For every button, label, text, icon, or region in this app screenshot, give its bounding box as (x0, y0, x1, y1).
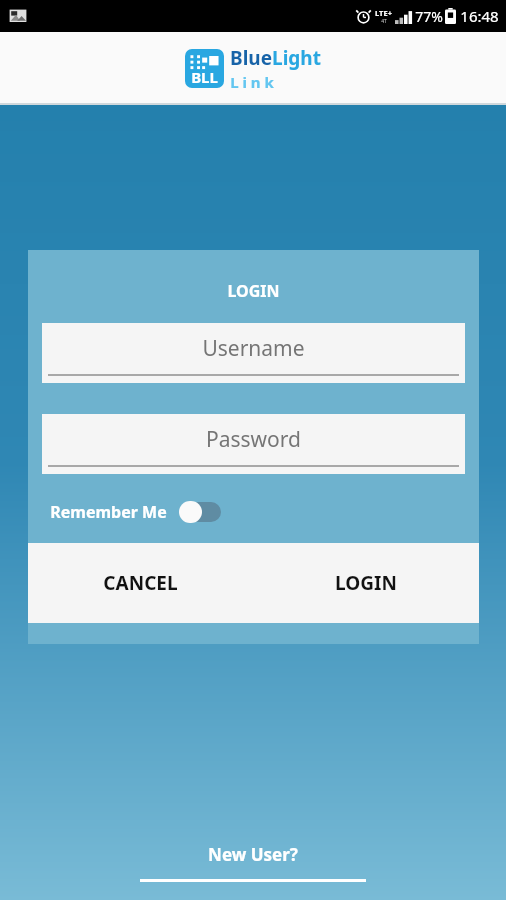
staticText: Light (272, 45, 321, 71)
staticText: 4T (381, 18, 387, 25)
button[interactable]: Username (42, 323, 465, 383)
staticText: LOGIN (335, 570, 397, 596)
staticText: New User? (208, 843, 298, 866)
staticText: BLL (191, 67, 218, 87)
button[interactable]: CANCEL (28, 543, 253, 623)
button[interactable]: New User? (0, 843, 506, 882)
staticText: 16:48 (460, 6, 499, 26)
staticText: Username (42, 334, 465, 363)
staticText: L i n k (230, 72, 274, 92)
staticText: LOGIN (28, 280, 479, 302)
other: Remember Me toggle (179, 501, 221, 523)
button[interactable]: Remember Me (50, 501, 479, 523)
staticText: Password (42, 425, 465, 454)
staticText: LTE+ (375, 8, 392, 18)
staticText: Remember Me (50, 501, 167, 523)
staticText: 77% (415, 7, 443, 26)
staticText: Blue (230, 45, 272, 71)
button[interactable]: Password (42, 414, 465, 474)
staticText: CANCEL (103, 570, 178, 596)
button[interactable]: LOGIN (253, 543, 479, 623)
